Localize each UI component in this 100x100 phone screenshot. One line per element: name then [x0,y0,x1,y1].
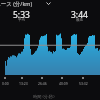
staticText: 40:09 [59,81,68,86]
staticText: 時間 (分:秒) [33,94,55,100]
staticText: 5:33 [13,9,30,21]
staticText: 0:00 [2,81,9,86]
staticText: 26:46 [38,81,47,86]
staticText: 平均 [18,18,26,23]
staticText: 53:32 [79,81,88,86]
button[interactable]: Change metric [44,0,53,8]
staticText: ペース (分/km) [0,0,33,8]
staticText: 3:44 [71,9,88,21]
staticText: 最高 [76,18,84,23]
staticText: 13:23 [19,81,28,86]
